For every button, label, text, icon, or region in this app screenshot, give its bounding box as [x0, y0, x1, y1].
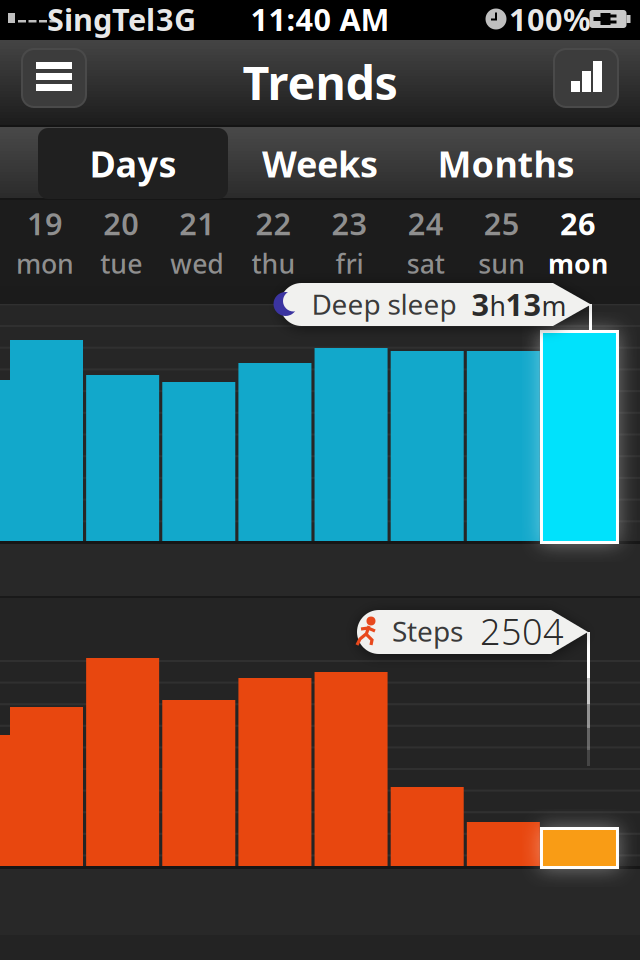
staticText: 24	[408, 203, 444, 244]
button[interactable]: 20	[84, 202, 158, 282]
staticText: mon	[16, 246, 74, 281]
button[interactable]: 19	[8, 202, 82, 282]
button[interactable]: 24	[389, 202, 463, 282]
staticText: 26	[560, 203, 596, 244]
button[interactable]: 23	[313, 202, 387, 282]
button[interactable]: 22	[236, 202, 310, 282]
staticText: 2504	[480, 607, 564, 655]
staticText: Days	[89, 140, 176, 187]
staticText: sun	[478, 246, 525, 281]
button[interactable]: Weeks	[225, 128, 415, 199]
staticText: 3G	[156, 0, 196, 39]
staticText: Deep sleep	[311, 285, 456, 323]
staticText: 23	[332, 203, 368, 244]
staticText: tue	[100, 246, 142, 281]
button[interactable]: Charts	[554, 49, 618, 107]
staticText: Trends	[242, 51, 397, 113]
staticText: 20	[103, 203, 139, 244]
staticText: 19	[27, 203, 63, 244]
staticText: 21	[179, 203, 215, 244]
staticText: Steps	[392, 612, 463, 650]
button[interactable]: 21	[160, 202, 234, 282]
button[interactable]: 25	[465, 202, 539, 282]
staticText: mon	[548, 246, 608, 281]
button[interactable]: Menu	[22, 49, 86, 107]
staticText: Weeks	[262, 140, 378, 187]
staticText: thu	[251, 246, 295, 281]
staticText: 3h13m	[471, 284, 566, 324]
staticText: SingTel	[47, 0, 155, 39]
button[interactable]: Months	[411, 128, 601, 199]
staticText: 100%	[509, 0, 591, 39]
staticText: 11:40 AM	[250, 0, 389, 39]
button[interactable]: 26	[541, 202, 615, 282]
staticText: 25	[484, 203, 520, 244]
staticText: 22	[255, 203, 291, 244]
staticText: sat	[407, 246, 445, 281]
button[interactable]: Days	[38, 128, 228, 199]
staticText: wed	[170, 246, 224, 281]
staticText: Months	[437, 140, 574, 187]
staticText: fri	[336, 246, 364, 281]
